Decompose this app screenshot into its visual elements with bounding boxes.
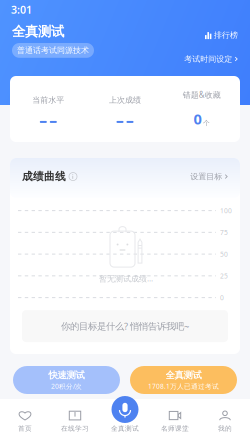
button[interactable]: 排行榜 — [205, 29, 238, 41]
button[interactable]: 全真测试 — [130, 366, 237, 394]
button[interactable]: 我的 — [200, 399, 250, 444]
button[interactable]: 快速测试 — [13, 366, 120, 394]
staticText: 错题&收藏 — [183, 89, 221, 100]
staticText: 设置目标 — [190, 172, 222, 181]
staticText: 当前水平 — [32, 95, 64, 105]
button[interactable]: 首页 — [0, 399, 50, 444]
button[interactable]: 在线学习 — [50, 399, 100, 444]
staticText: 上次成绩 — [109, 95, 141, 105]
staticText: 暂无测试成绩... — [99, 273, 153, 284]
button[interactable]: 全真测试 — [100, 399, 150, 444]
staticText: 排行榜 — [214, 30, 238, 40]
staticText: 普通话考试同源技术 — [17, 45, 89, 55]
staticText: 0 — [193, 109, 201, 129]
staticText: 成绩曲线 — [22, 170, 66, 183]
staticText: 100 — [220, 206, 232, 215]
staticText: 1708.1万人已通过考试 — [148, 382, 219, 391]
staticText: 你的目标是什么? 悄悄告诉我吧~ — [61, 320, 189, 332]
staticText: 50 — [220, 250, 228, 259]
staticText: 75 — [220, 228, 228, 237]
staticText: 全真测试 — [111, 424, 139, 433]
button[interactable]: 名师课堂 — [150, 399, 200, 444]
button[interactable]: 考试时间设定 — [184, 41, 238, 65]
staticText: 20积分/次 — [51, 382, 82, 391]
staticText: 3:01 — [11, 2, 32, 17]
staticText: 在线学习 — [61, 424, 89, 433]
button[interactable]: 全真测试 — [111, 396, 138, 423]
staticText: 全真测试 — [12, 23, 64, 40]
staticText: 首页 — [18, 424, 32, 433]
staticText: 名师课堂 — [161, 424, 189, 433]
staticText: 快速测试 — [48, 369, 84, 381]
staticText: 0 — [220, 293, 224, 302]
staticText: 我的 — [218, 424, 232, 433]
staticText: 25 — [220, 271, 228, 280]
staticText: 全真测试 — [165, 369, 201, 381]
staticText: 个 — [203, 119, 210, 127]
button[interactable]: 设置目标 — [190, 172, 228, 181]
staticText: 考试时间设定 — [184, 54, 232, 64]
